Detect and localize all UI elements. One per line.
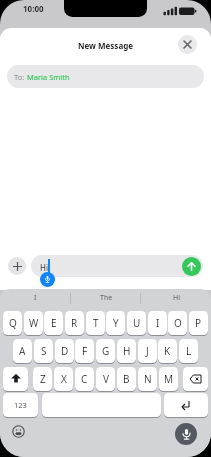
button[interactable]: Y <box>106 311 125 335</box>
staticText: To: <box>14 72 27 82</box>
button[interactable]: N <box>138 367 157 391</box>
button[interactable]: M <box>159 367 178 391</box>
staticText: I <box>34 293 37 303</box>
staticText: F <box>82 344 88 358</box>
button[interactable] <box>3 367 28 391</box>
button[interactable]: S <box>34 339 53 363</box>
button[interactable] <box>40 272 55 287</box>
staticText: 10:00 <box>23 3 44 14</box>
staticText: I <box>156 316 160 330</box>
button[interactable]: W <box>24 311 43 335</box>
staticText: Y <box>113 316 119 330</box>
button[interactable]: C <box>75 367 94 391</box>
button[interactable] <box>11 424 25 438</box>
button[interactable]: Q <box>3 311 22 335</box>
button[interactable]: I <box>0 289 71 306</box>
button[interactable]: D <box>55 339 74 363</box>
button[interactable]: O <box>168 311 187 335</box>
staticText: C <box>81 372 88 386</box>
staticText: G <box>102 344 110 358</box>
staticText: U <box>133 316 141 330</box>
staticText: New Message <box>0 40 211 51</box>
button[interactable]: E <box>44 311 63 335</box>
staticText: Z <box>40 372 46 386</box>
staticText: The <box>100 293 113 303</box>
button[interactable]: L <box>179 339 198 363</box>
staticText: B <box>123 372 130 386</box>
button[interactable]: G <box>96 339 115 363</box>
button[interactable]: H <box>117 339 136 363</box>
button[interactable]: 123 <box>3 393 38 417</box>
button[interactable]: I <box>148 311 167 335</box>
staticText: W <box>29 316 39 330</box>
staticText: N <box>144 372 152 386</box>
button[interactable]: R <box>65 311 84 335</box>
staticText: M <box>164 372 174 386</box>
button[interactable]: K <box>158 339 177 363</box>
staticText: Maria Smith <box>27 72 70 82</box>
button[interactable]: B <box>117 367 136 391</box>
staticText: E <box>51 316 57 330</box>
button[interactable]: Hi <box>141 289 211 306</box>
staticText: A <box>19 344 26 358</box>
staticText: 123 <box>14 400 27 410</box>
staticText: Hi <box>40 262 48 273</box>
staticText: J <box>146 344 149 358</box>
staticText: T <box>93 316 99 330</box>
staticText: Q <box>9 316 17 330</box>
button[interactable]: T <box>86 311 105 335</box>
staticText: Hi <box>173 293 180 303</box>
button[interactable]: The <box>71 289 141 306</box>
staticText: X <box>61 372 67 386</box>
staticText: O <box>174 316 182 330</box>
button[interactable] <box>182 257 201 276</box>
button[interactable]: U <box>127 311 146 335</box>
button[interactable] <box>183 367 208 391</box>
button[interactable]: To: <box>7 65 204 88</box>
staticText: P <box>195 316 202 330</box>
staticText: L <box>186 344 192 358</box>
staticText: V <box>103 372 109 386</box>
staticText: K <box>164 344 171 358</box>
staticText: H <box>123 344 131 358</box>
button[interactable] <box>42 393 161 417</box>
button[interactable]: A <box>13 339 32 363</box>
button[interactable]: J <box>138 339 157 363</box>
button[interactable]: Z <box>33 367 52 391</box>
button[interactable]: X <box>54 367 73 391</box>
button[interactable] <box>175 423 197 445</box>
button[interactable]: Hi <box>31 255 203 277</box>
staticText: S <box>41 344 47 358</box>
button[interactable] <box>8 257 26 275</box>
staticText: R <box>71 316 78 330</box>
button[interactable]: P <box>189 311 208 335</box>
button[interactable] <box>178 35 197 54</box>
button[interactable]: V <box>96 367 115 391</box>
staticText: D <box>61 344 69 358</box>
button[interactable]: F <box>75 339 94 363</box>
button[interactable] <box>164 393 208 417</box>
